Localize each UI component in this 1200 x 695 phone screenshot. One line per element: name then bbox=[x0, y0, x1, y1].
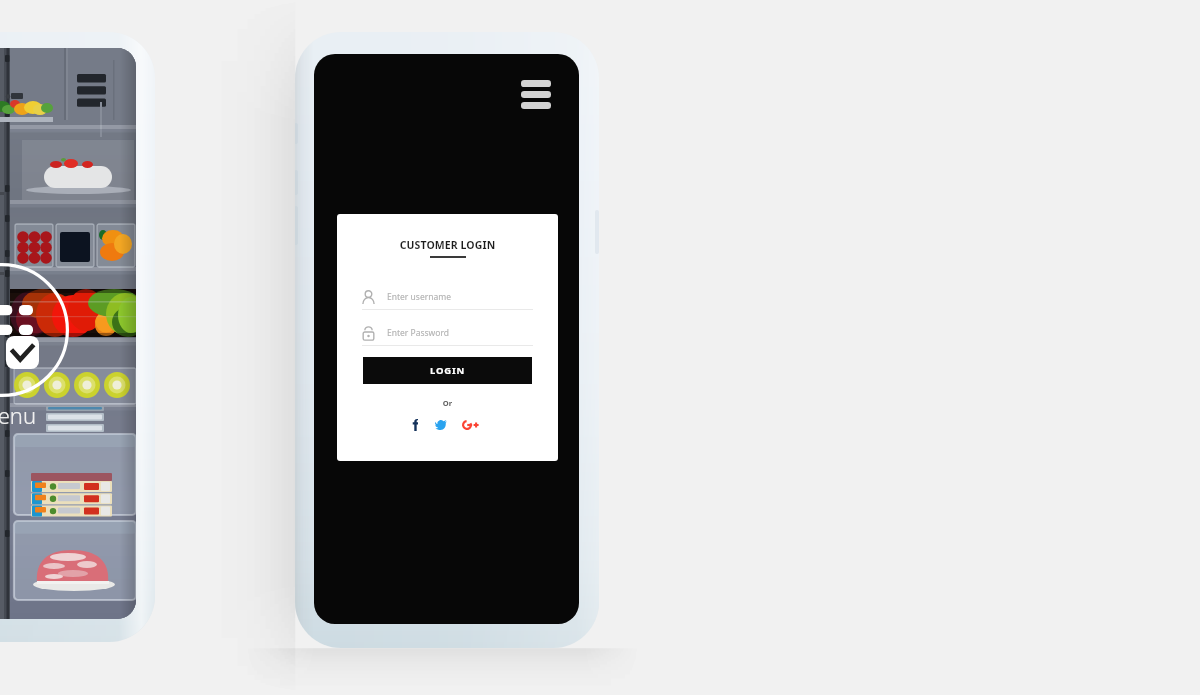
staticText: Or bbox=[337, 398, 558, 408]
button[interactable]: Menu bbox=[514, 74, 557, 115]
button[interactable]: Sign in with Google Plus bbox=[458, 415, 480, 435]
button[interactable]: Sign in with Twitter bbox=[431, 415, 451, 435]
staticText: LOGIN bbox=[430, 364, 465, 377]
staticText: Enter username bbox=[387, 291, 451, 303]
button[interactable]: Enter Password bbox=[362, 325, 533, 341]
staticText: Enter Password bbox=[387, 327, 450, 339]
button[interactable]: Sign in with Facebook bbox=[406, 415, 424, 435]
staticText: menu bbox=[0, 400, 36, 430]
staticText: CUSTOMER LOGIN bbox=[337, 238, 558, 252]
button[interactable]: Enter username bbox=[362, 289, 533, 305]
button[interactable]: Select bbox=[6, 336, 39, 369]
button[interactable]: LOGIN bbox=[363, 357, 532, 384]
